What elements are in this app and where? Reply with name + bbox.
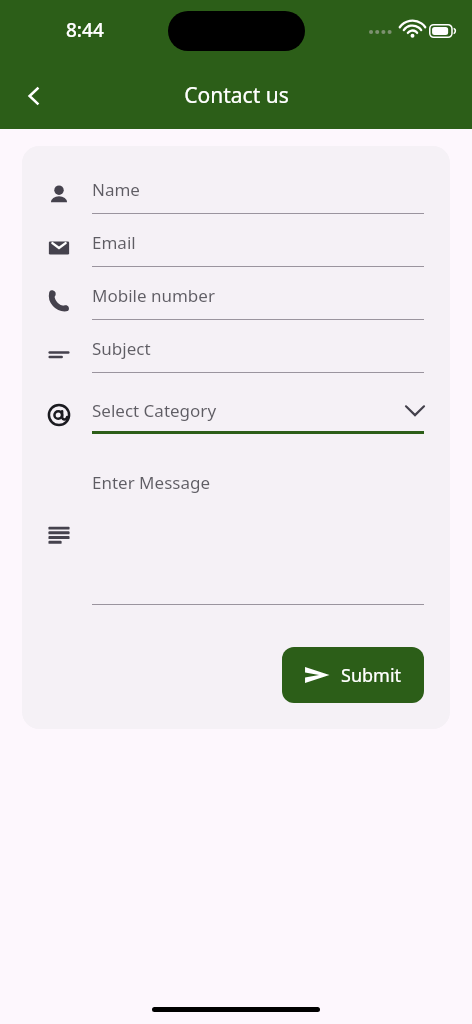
button[interactable]: Email: [22, 231, 450, 284]
button[interactable]: Name: [22, 178, 450, 231]
button[interactable]: Submit: [282, 647, 424, 703]
staticText: Contact us: [184, 81, 289, 110]
staticText: 8:44: [66, 17, 104, 43]
staticText: Select Category: [92, 399, 406, 422]
button[interactable]: Back: [8, 70, 60, 122]
button[interactable]: Mobile number: [22, 284, 450, 337]
staticText: Email: [92, 231, 136, 254]
staticText: Enter Message: [92, 471, 210, 494]
staticText: Name: [92, 178, 140, 201]
staticText: Submit: [341, 663, 402, 688]
staticText: Subject: [92, 337, 151, 360]
button[interactable]: Enter Message: [22, 452, 450, 627]
button[interactable]: Subject: [22, 337, 450, 390]
staticText: Mobile number: [92, 284, 215, 307]
button[interactable]: Select Category: [22, 399, 450, 452]
